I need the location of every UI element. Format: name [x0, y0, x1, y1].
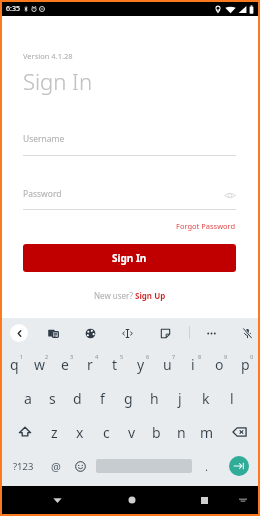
staticText: i — [191, 355, 195, 374]
staticText: t — [112, 355, 118, 374]
staticText: 8 — [198, 353, 202, 360]
staticText: n — [177, 423, 186, 442]
button[interactable]: Voice input off — [238, 324, 256, 342]
button[interactable]: More options — [202, 324, 220, 342]
staticText: 3 — [70, 353, 74, 360]
staticText: ?123 — [13, 460, 34, 473]
staticText: b — [152, 423, 161, 442]
button[interactable]: p — [232, 347, 258, 381]
staticText: m — [200, 423, 214, 442]
staticText: 2 — [45, 353, 49, 360]
button[interactable]: Sign Up — [135, 290, 166, 301]
button[interactable]: Back — [10, 324, 28, 342]
button[interactable]: q — [2, 347, 27, 381]
button[interactable]: v — [119, 415, 144, 449]
button[interactable]: ?123 — [8, 449, 38, 483]
button[interactable]: b — [144, 415, 169, 449]
staticText: g — [124, 389, 133, 408]
staticText: c — [103, 423, 110, 442]
staticText: u — [163, 355, 172, 374]
button[interactable]: f — [90, 381, 115, 415]
button[interactable]: Recent apps — [193, 489, 215, 511]
staticText: 0 — [250, 353, 254, 360]
button[interactable]: x — [67, 415, 93, 449]
staticText: 5 — [120, 353, 124, 360]
staticText: @ — [51, 459, 61, 474]
staticText: p — [241, 355, 250, 374]
staticText: 6:35 — [6, 4, 20, 14]
button[interactable]: @ — [45, 449, 67, 483]
staticText: r — [87, 355, 93, 374]
button[interactable]: Sign In — [23, 244, 236, 272]
staticText: h — [150, 389, 159, 408]
staticText: Password — [23, 188, 62, 200]
button[interactable]: u — [154, 347, 180, 381]
staticText: x — [76, 423, 84, 442]
staticText: . — [205, 459, 208, 474]
staticText: 1 — [20, 353, 24, 360]
button[interactable]: i — [180, 347, 206, 381]
button[interactable]: Clipboard — [44, 324, 62, 342]
button[interactable]: Theme — [81, 324, 99, 342]
staticText: y — [137, 355, 145, 374]
staticText: Sign In — [23, 66, 93, 96]
other: Show password — [224, 191, 236, 200]
staticText: q — [10, 355, 19, 374]
button[interactable]: Home — [121, 489, 143, 511]
button[interactable]: j — [167, 381, 193, 415]
staticText: Sign In — [112, 251, 147, 265]
staticText: f — [100, 389, 105, 408]
staticText: s — [49, 389, 56, 408]
button[interactable]: z — [41, 415, 67, 449]
button[interactable]: Emoji — [69, 449, 91, 483]
button[interactable]: Back — [46, 489, 68, 511]
button[interactable]: Shift — [7, 415, 42, 449]
staticText: 6 — [146, 353, 150, 360]
staticText: e — [61, 355, 69, 374]
button[interactable]: n — [169, 415, 194, 449]
button[interactable]: Text editing — [118, 324, 136, 342]
button[interactable]: k — [193, 381, 219, 415]
button[interactable]: l — [219, 381, 245, 415]
staticText: w — [34, 355, 46, 374]
button[interactable]: a — [15, 381, 40, 415]
button[interactable]: t — [102, 347, 128, 381]
button[interactable]: c — [93, 415, 119, 449]
button[interactable]: h — [141, 381, 167, 415]
button[interactable]: Enter — [229, 456, 249, 476]
staticText: 9 — [224, 353, 228, 360]
button[interactable]: Change keyboard — [234, 491, 252, 509]
button[interactable]: Forgot Password — [176, 221, 236, 231]
button[interactable]: r — [77, 347, 102, 381]
staticText: v — [128, 423, 136, 442]
button[interactable]: o — [206, 347, 232, 381]
button[interactable]: d — [65, 381, 90, 415]
staticText: Version 4.1.28 — [23, 51, 73, 61]
staticText: d — [73, 389, 82, 408]
staticText: 4 — [95, 353, 99, 360]
staticText: j — [178, 389, 182, 408]
staticText: 7 — [172, 353, 176, 360]
staticText: l — [230, 389, 234, 408]
staticText: Username — [23, 133, 65, 145]
staticText: z — [51, 423, 58, 442]
button[interactable]: m — [194, 415, 219, 449]
staticText: a — [24, 389, 32, 408]
staticText: New user? — [94, 290, 135, 301]
button[interactable]: g — [115, 381, 141, 415]
button[interactable]: y — [128, 347, 154, 381]
button[interactable]: Stickers — [156, 324, 174, 342]
button[interactable]: s — [40, 381, 65, 415]
button[interactable]: Backspace — [222, 415, 257, 449]
staticText: o — [215, 355, 224, 374]
button[interactable]: . — [196, 449, 216, 483]
button[interactable]: e — [52, 347, 77, 381]
button[interactable]: Password — [23, 188, 236, 210]
staticText: k — [202, 389, 210, 408]
button[interactable]: Username — [23, 133, 236, 156]
button[interactable]: w — [27, 347, 52, 381]
